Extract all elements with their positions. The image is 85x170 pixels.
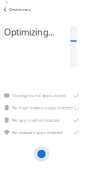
button[interactable]: Stop optimization [32,145,50,163]
button[interactable]: 3 background apps closed [0,89,85,102]
staticText: No high battery usage detected [12,105,73,110]
button[interactable]: No app crashes detected [0,114,85,126]
button[interactable]: Back to Device care [0,4,84,14]
staticText: Optimizing... [4,26,54,38]
staticText: No malware apps detected [12,129,63,135]
staticText: No app crashes detected [12,117,60,123]
button[interactable]: No malware apps detected [0,126,85,138]
staticText: 3 background apps closed [12,93,66,98]
button[interactable]: No high battery usage detected [0,102,85,114]
staticText: Device care [9,7,30,12]
